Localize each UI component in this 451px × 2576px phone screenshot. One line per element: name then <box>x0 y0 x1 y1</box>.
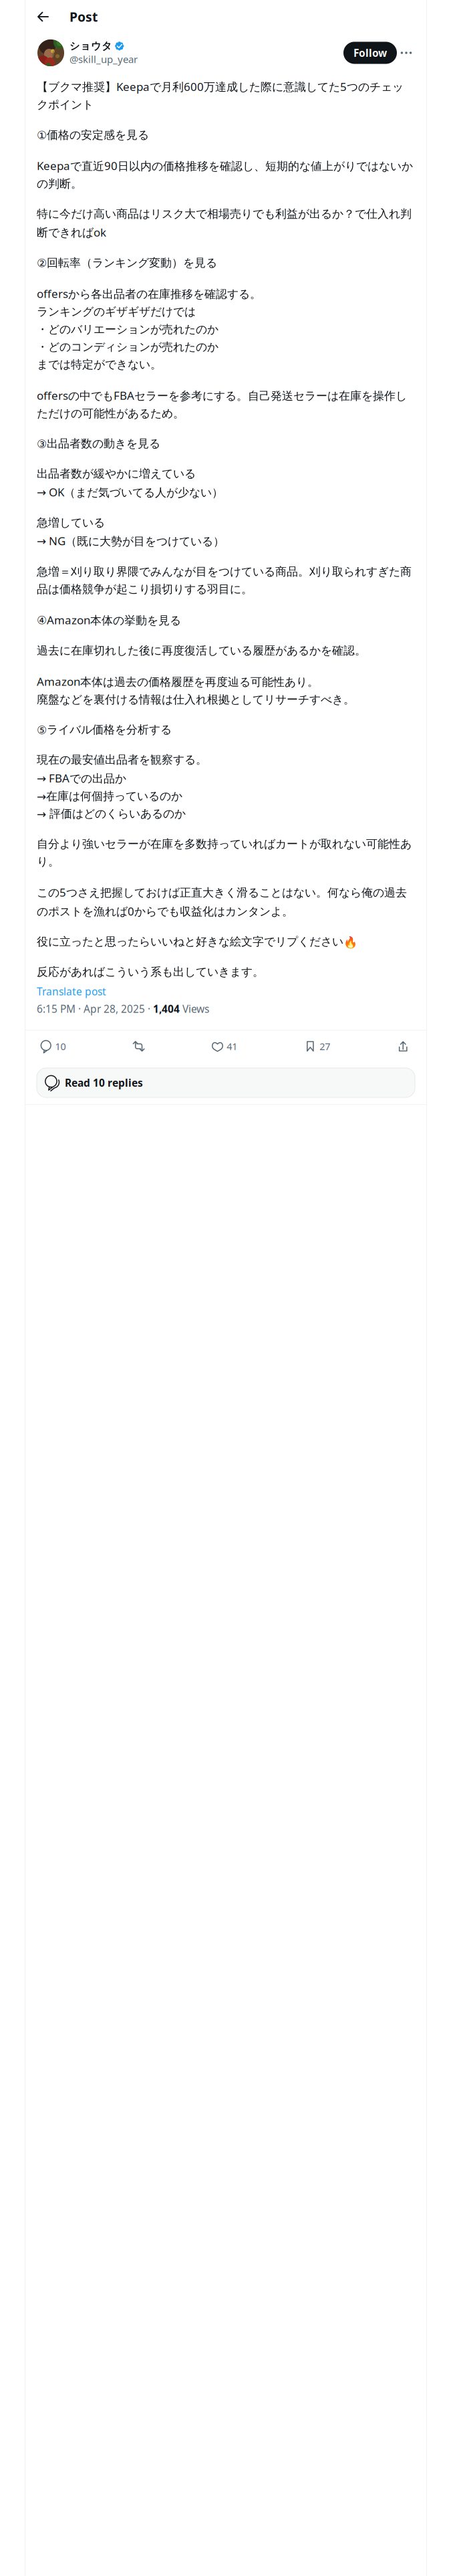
staticText: 急増＝刈り取り界隈でみんなが目をつけている商品。刈り取られすぎた商 <box>37 564 412 579</box>
staticText: @skill_up_year <box>69 52 138 66</box>
button[interactable]: More <box>397 43 416 62</box>
staticText: 現在の最安値出品者を観察する。 <box>37 753 207 767</box>
staticText: のポストを漁れば0からでも収益化はカンタンよ。 <box>37 903 293 919</box>
staticText: → OK（まだ気づいてる人が少ない） <box>37 484 223 500</box>
button[interactable]: Like <box>212 1036 237 1057</box>
staticText: → NG（既に大勢が目をつけている） <box>37 533 224 549</box>
staticText: Views <box>180 1002 209 1016</box>
staticText: ③出品者数の動きを見る <box>37 436 160 451</box>
staticText: 1,404 <box>153 1002 180 1016</box>
button[interactable]: Translate post <box>37 984 106 998</box>
staticText: 廃盤などを裏付ける情報は仕入れ根拠としてリサーチすべき。 <box>37 692 355 707</box>
staticText: → FBAでの出品か <box>37 770 126 786</box>
staticText: 断できればok <box>37 224 106 240</box>
staticText: クポイント <box>37 98 94 112</box>
staticText: 出品者数が緩やかに増えている <box>37 467 196 481</box>
staticText: 【ブクマ推奨】Keepaで月利600万達成した際に意識してた5つのチェッ <box>37 79 404 94</box>
staticText: 役に立ったと思ったらいいねと好きな絵文字でリプください🔥 <box>37 935 357 949</box>
button[interactable]: Share <box>397 1036 409 1056</box>
button[interactable]: Back <box>31 5 55 28</box>
staticText: Keepaで直近90日以内の価格推移を確認し、短期的な値上がりではないか <box>37 158 413 173</box>
staticText: ①価格の安定感を見る <box>37 128 149 142</box>
staticText: 6:15 PM · Apr 28, 2025 · <box>37 1002 153 1016</box>
staticText: 反応があればこういう系も出していきます。 <box>37 965 264 979</box>
staticText: り。 <box>37 854 59 869</box>
staticText: → 評価はどのくらいあるのか <box>37 807 186 821</box>
staticText: 自分より強いセラーが在庫を多数持っていればカートが取れない可能性あ <box>37 837 412 851</box>
staticText: ショウタ <box>69 40 112 52</box>
staticText: 品は価格競争が起こり損切りする羽目に。 <box>37 582 253 596</box>
staticText: 急増している <box>37 516 105 530</box>
staticText: Read 10 replies <box>65 1076 143 1090</box>
staticText: 過去に在庫切れした後に再度復活している履歴があるかを確認。 <box>37 644 366 658</box>
button[interactable]: Read 10 replies <box>37 1068 415 1097</box>
staticText: までは特定ができない。 <box>37 357 162 372</box>
staticText: 41 <box>227 1040 237 1053</box>
staticText: 特に今だけ高い商品はリスク大で相場売りでも利益が出るか？で仕入れ判 <box>37 207 412 221</box>
staticText: ②回転率（ランキング変動）を見る <box>37 256 217 270</box>
staticText: の判断。 <box>37 177 82 191</box>
staticText: Follow <box>353 46 387 60</box>
button[interactable]: Repost <box>133 1036 145 1056</box>
staticText: ④Amazon本体の挙動を見る <box>37 612 181 628</box>
staticText: offersから各出品者の在庫推移を確認する。 <box>37 286 261 301</box>
staticText: Post <box>69 8 98 25</box>
staticText: この5つさえ把握しておけば正直大きく滑ることはない。何なら俺の過去 <box>37 885 407 900</box>
button[interactable]: Follow <box>343 42 397 64</box>
staticText: →在庫は何個持っているのか <box>37 789 182 803</box>
button[interactable]: Reply <box>40 1036 66 1057</box>
staticText: Translate post <box>37 984 106 998</box>
staticText: ・どのコンディションが売れたのか <box>37 340 218 354</box>
staticText: ただけの可能性があるため。 <box>37 406 184 421</box>
staticText: offersの中でもFBAセラーを参考にする。自己発送セラーは在庫を操作し <box>37 388 407 403</box>
staticText: ・どのバリエーションが売れたのか <box>37 322 218 337</box>
button[interactable]: Bookmark <box>304 1036 330 1057</box>
button[interactable]: Profile photo <box>37 39 64 66</box>
staticText: 10 <box>55 1040 66 1053</box>
staticText: ランキングのギザギザだけでは <box>37 305 196 319</box>
staticText: Amazon本体は過去の価格履歴を再度辿る可能性あり。 <box>37 674 319 689</box>
staticText: 27 <box>319 1040 330 1053</box>
staticText: ⑤ライバル価格を分析する <box>37 723 172 737</box>
